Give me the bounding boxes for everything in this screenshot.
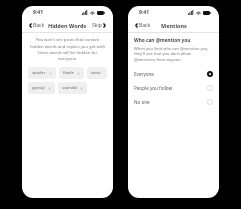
button[interactable]: finale [59, 67, 84, 79]
staticText: twist [91, 70, 101, 76]
other: Remove spoiler [49, 72, 52, 75]
staticText: Hidden Words [48, 22, 87, 29]
button[interactable]: twist [87, 67, 107, 79]
staticText: Everyone [134, 71, 207, 77]
staticText: You won't see posts that contain hidden … [29, 37, 106, 61]
staticText: When you limit who can @mention you, the… [134, 46, 213, 62]
staticText: Mentions [161, 22, 187, 29]
button[interactable]: Everyone [128, 67, 219, 81]
button[interactable]: scandal [58, 82, 87, 94]
button[interactable]: Back [133, 20, 153, 31]
button[interactable]: spoiler [28, 67, 56, 79]
button[interactable]: Back [27, 20, 47, 31]
button[interactable]: People you follow [128, 81, 219, 95]
other: Remove scandal [80, 87, 83, 90]
other: Remove finale [77, 72, 80, 75]
staticText: Back [139, 22, 151, 29]
staticText: Skip [92, 22, 102, 29]
button[interactable]: gossip [28, 82, 55, 94]
other: Remove gossip [48, 87, 51, 90]
staticText: gossip [32, 85, 45, 91]
staticText: 9:41 [139, 9, 149, 16]
staticText: 9:41 [33, 9, 43, 16]
button[interactable]: Skip [90, 20, 108, 31]
staticText: scandal [62, 85, 77, 91]
staticText: spoiler [32, 70, 46, 76]
button[interactable]: No one [128, 95, 219, 109]
staticText: finale [63, 70, 74, 76]
staticText: Back [33, 22, 45, 29]
staticText: No one [134, 99, 207, 105]
staticText: Who can @mention you [134, 37, 191, 44]
staticText: People you follow [134, 85, 207, 91]
